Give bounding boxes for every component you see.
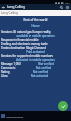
button[interactable]: Settings [64, 4, 70, 10]
staticText: Not verified [10, 70, 71, 74]
staticText: Not verified [21, 62, 71, 66]
button[interactable]: Long Calling [0, 10, 71, 16]
staticText: ● ● ▮▮ 9:41 [55, 1, 70, 4]
staticText: Home [1, 24, 70, 28]
staticText: Paid activated [1, 50, 70, 54]
staticText: Not activated [8, 74, 71, 78]
staticText: Response in financial mobile [1, 38, 70, 42]
staticText: Sessions 36 natural gas Europe reality [1, 30, 70, 34]
staticText: Trading and electronic money trade [1, 42, 70, 46]
staticText: Rating [1, 70, 10, 74]
button[interactable]: Back [0, 4, 6, 10]
staticText: Services for supported mobile numbers [1, 54, 70, 58]
staticText: Rest of the world [1, 18, 70, 22]
staticText: Trades destination Magic Demand [1, 46, 70, 50]
staticText: Activated in mobile operators [1, 58, 70, 62]
staticText: Long Calling [7, 5, 26, 9]
button[interactable]: Call [58, 101, 68, 111]
button[interactable]: Search [58, 4, 64, 10]
staticText: available in mobile operators [1, 34, 70, 38]
staticText: Likes [1, 74, 8, 78]
staticText: Comments [1, 66, 16, 70]
staticText: Long Calling [1, 11, 18, 15]
staticText: Message 1,000 [1, 62, 21, 66]
staticText: Advertisement [6, 115, 24, 118]
staticText: Not verified [16, 66, 71, 70]
